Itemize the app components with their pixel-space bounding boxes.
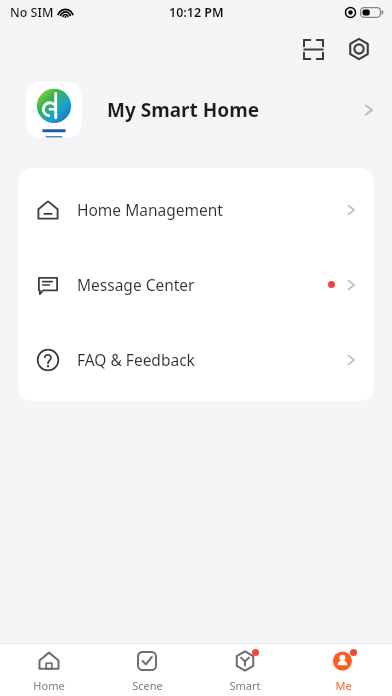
button[interactable]: FAQ & Feedback <box>18 322 374 397</box>
button[interactable]: Settings <box>340 30 378 68</box>
staticText: Message Center <box>77 274 195 295</box>
staticText: Home <box>33 678 65 693</box>
button[interactable]: Home <box>0 644 98 696</box>
button[interactable]: Smart <box>196 644 294 696</box>
button[interactable]: Home Management <box>18 172 374 247</box>
staticText: My Smart Home <box>107 97 260 123</box>
staticText: Smart <box>229 678 261 693</box>
staticText: FAQ & Feedback <box>77 349 195 370</box>
button[interactable]: My Smart Home <box>0 74 392 146</box>
button[interactable]: Scene <box>98 644 196 696</box>
staticText: Home Management <box>77 199 223 220</box>
button[interactable]: Message Center <box>18 247 374 322</box>
staticText: Me <box>335 678 352 693</box>
button[interactable]: Me <box>294 644 392 696</box>
button[interactable]: Scan QR code <box>294 30 332 68</box>
staticText: No SIM <box>10 4 54 21</box>
staticText: 10:12 PM <box>169 4 224 21</box>
staticText: Scene <box>132 678 163 693</box>
